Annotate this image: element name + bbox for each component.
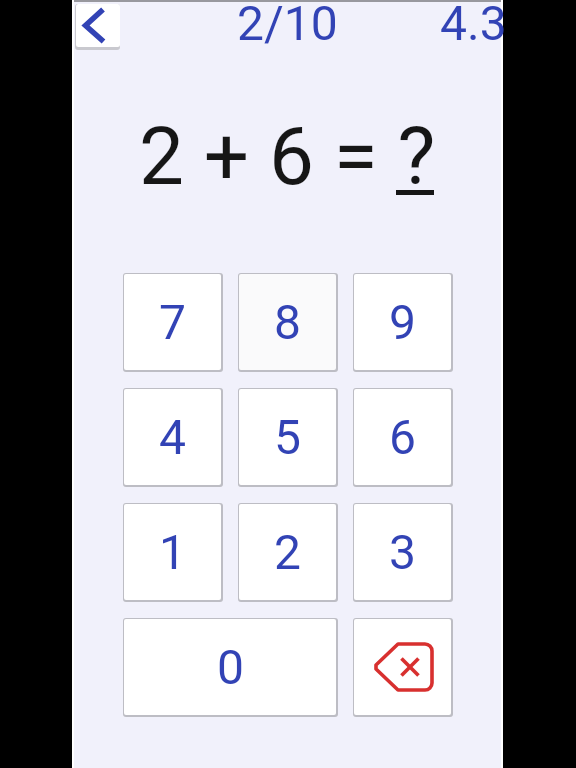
staticText: 2/10 — [237, 0, 338, 45]
staticText: 3 — [389, 524, 416, 580]
staticText: 1 — [159, 524, 186, 580]
staticText: 2 — [274, 524, 301, 580]
button[interactable]: 2 — [239, 504, 336, 600]
staticText: 7 — [159, 294, 186, 350]
button[interactable]: 7 — [124, 274, 221, 370]
staticText: 5 — [274, 409, 301, 465]
staticText: 6 — [389, 409, 416, 465]
staticText: 0 — [217, 639, 244, 695]
staticText: 4.3 — [440, 0, 507, 45]
staticText: 9 — [389, 294, 416, 350]
staticText: 2 + 6 = ? — [139, 110, 436, 204]
button[interactable] — [354, 619, 451, 715]
button[interactable]: 4 — [124, 389, 221, 485]
button[interactable]: 0 — [124, 619, 336, 715]
staticText: 4 — [159, 409, 186, 465]
staticText: 8 — [274, 294, 301, 350]
button[interactable] — [76, 4, 120, 47]
button[interactable]: 8 — [239, 274, 336, 370]
button[interactable]: 6 — [354, 389, 451, 485]
button[interactable]: 9 — [354, 274, 451, 370]
button[interactable]: 5 — [239, 389, 336, 485]
button[interactable]: 3 — [354, 504, 451, 600]
button[interactable]: 1 — [124, 504, 221, 600]
